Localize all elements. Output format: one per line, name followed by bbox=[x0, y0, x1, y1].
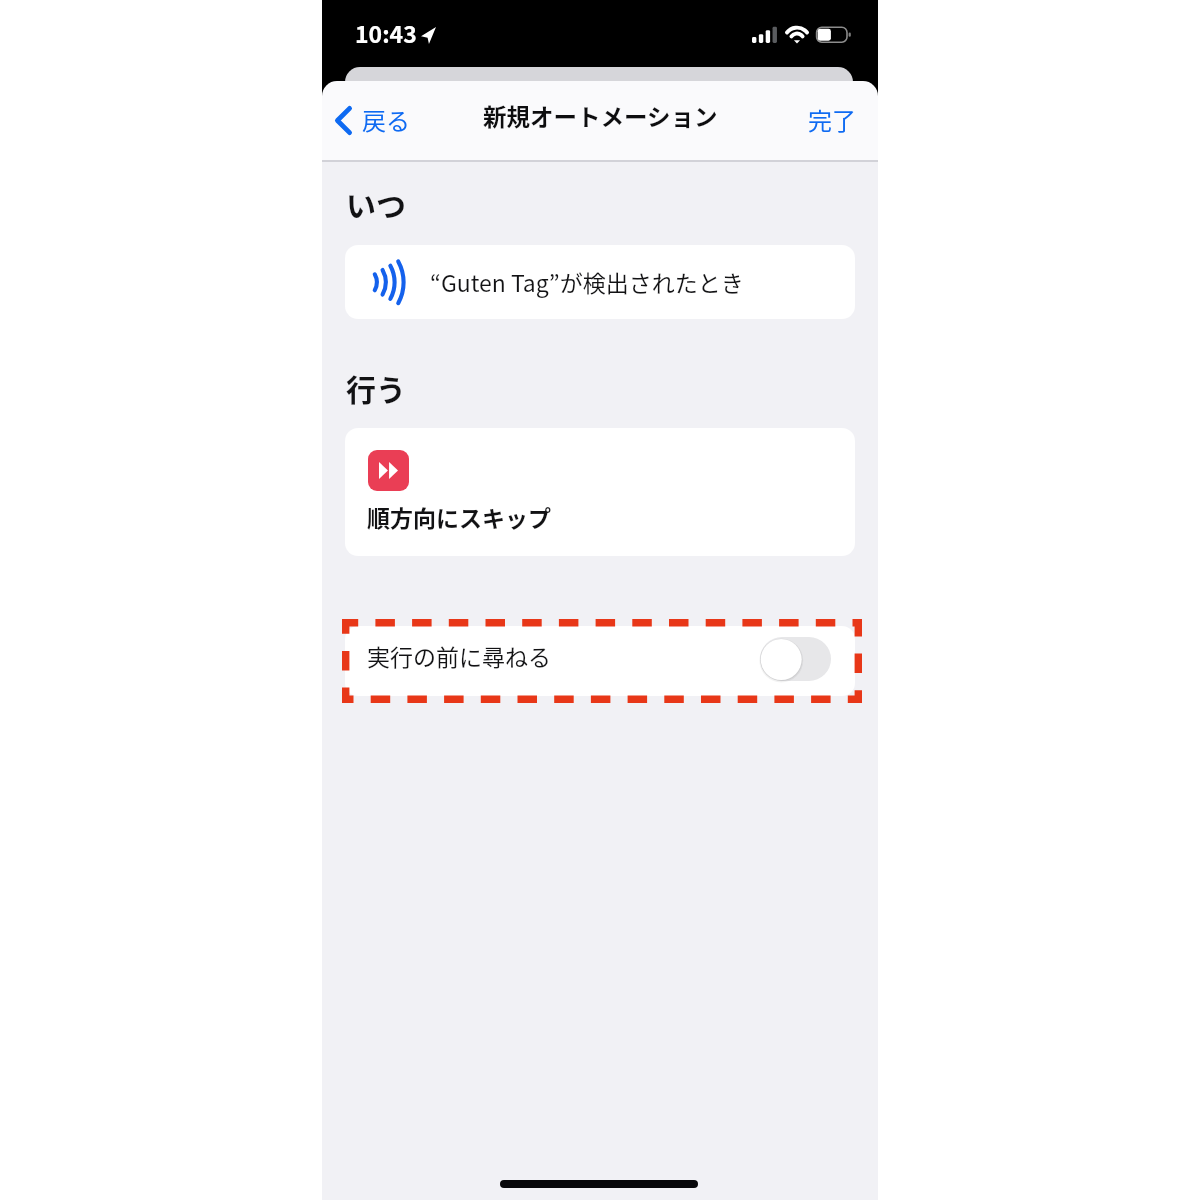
staticText: 実行の前に尋ねる bbox=[367, 639, 551, 672]
staticText: 完了 bbox=[808, 102, 856, 137]
staticText: 戻る bbox=[362, 102, 410, 137]
button[interactable]: 実行の前に尋ねる bbox=[345, 626, 855, 696]
button[interactable]: 戻る bbox=[327, 97, 418, 144]
staticText: 順方向にスキップ bbox=[367, 500, 551, 533]
button[interactable]: 完了 bbox=[800, 95, 864, 142]
staticText: “Guten Tag”が検出されたとき bbox=[430, 265, 744, 298]
staticText: いつ bbox=[346, 182, 406, 225]
button[interactable]: “Guten Tag”が検出されたとき bbox=[345, 245, 855, 319]
staticText: 10:43 bbox=[355, 16, 417, 49]
button[interactable]: 順方向にスキップ bbox=[345, 428, 855, 556]
other: Ask before running toggle bbox=[760, 637, 831, 681]
staticText: 行う bbox=[346, 366, 406, 409]
staticText: 新規オートメーション bbox=[483, 99, 718, 133]
